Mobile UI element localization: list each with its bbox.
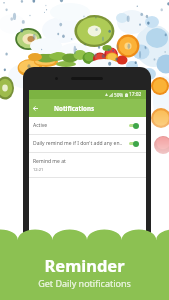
staticText: Active bbox=[33, 122, 129, 129]
button[interactable]: Daily remind me if I don't add any en.. bbox=[29, 135, 146, 152]
staticText: 17:02 bbox=[129, 91, 142, 98]
staticText: Notifications bbox=[54, 104, 95, 112]
staticText: 12:21 bbox=[33, 167, 44, 172]
staticText: Reminder bbox=[44, 254, 125, 276]
button[interactable]: Active bbox=[29, 117, 146, 134]
button[interactable]: Back bbox=[29, 100, 41, 116]
staticText: Daily remind me if I don't add any en.. bbox=[33, 140, 129, 147]
button[interactable]: Remind me at bbox=[29, 153, 146, 177]
staticText: Remind me at bbox=[33, 158, 66, 165]
staticText: Get Daily notifications bbox=[38, 277, 131, 289]
staticText: 50% bbox=[114, 92, 124, 98]
